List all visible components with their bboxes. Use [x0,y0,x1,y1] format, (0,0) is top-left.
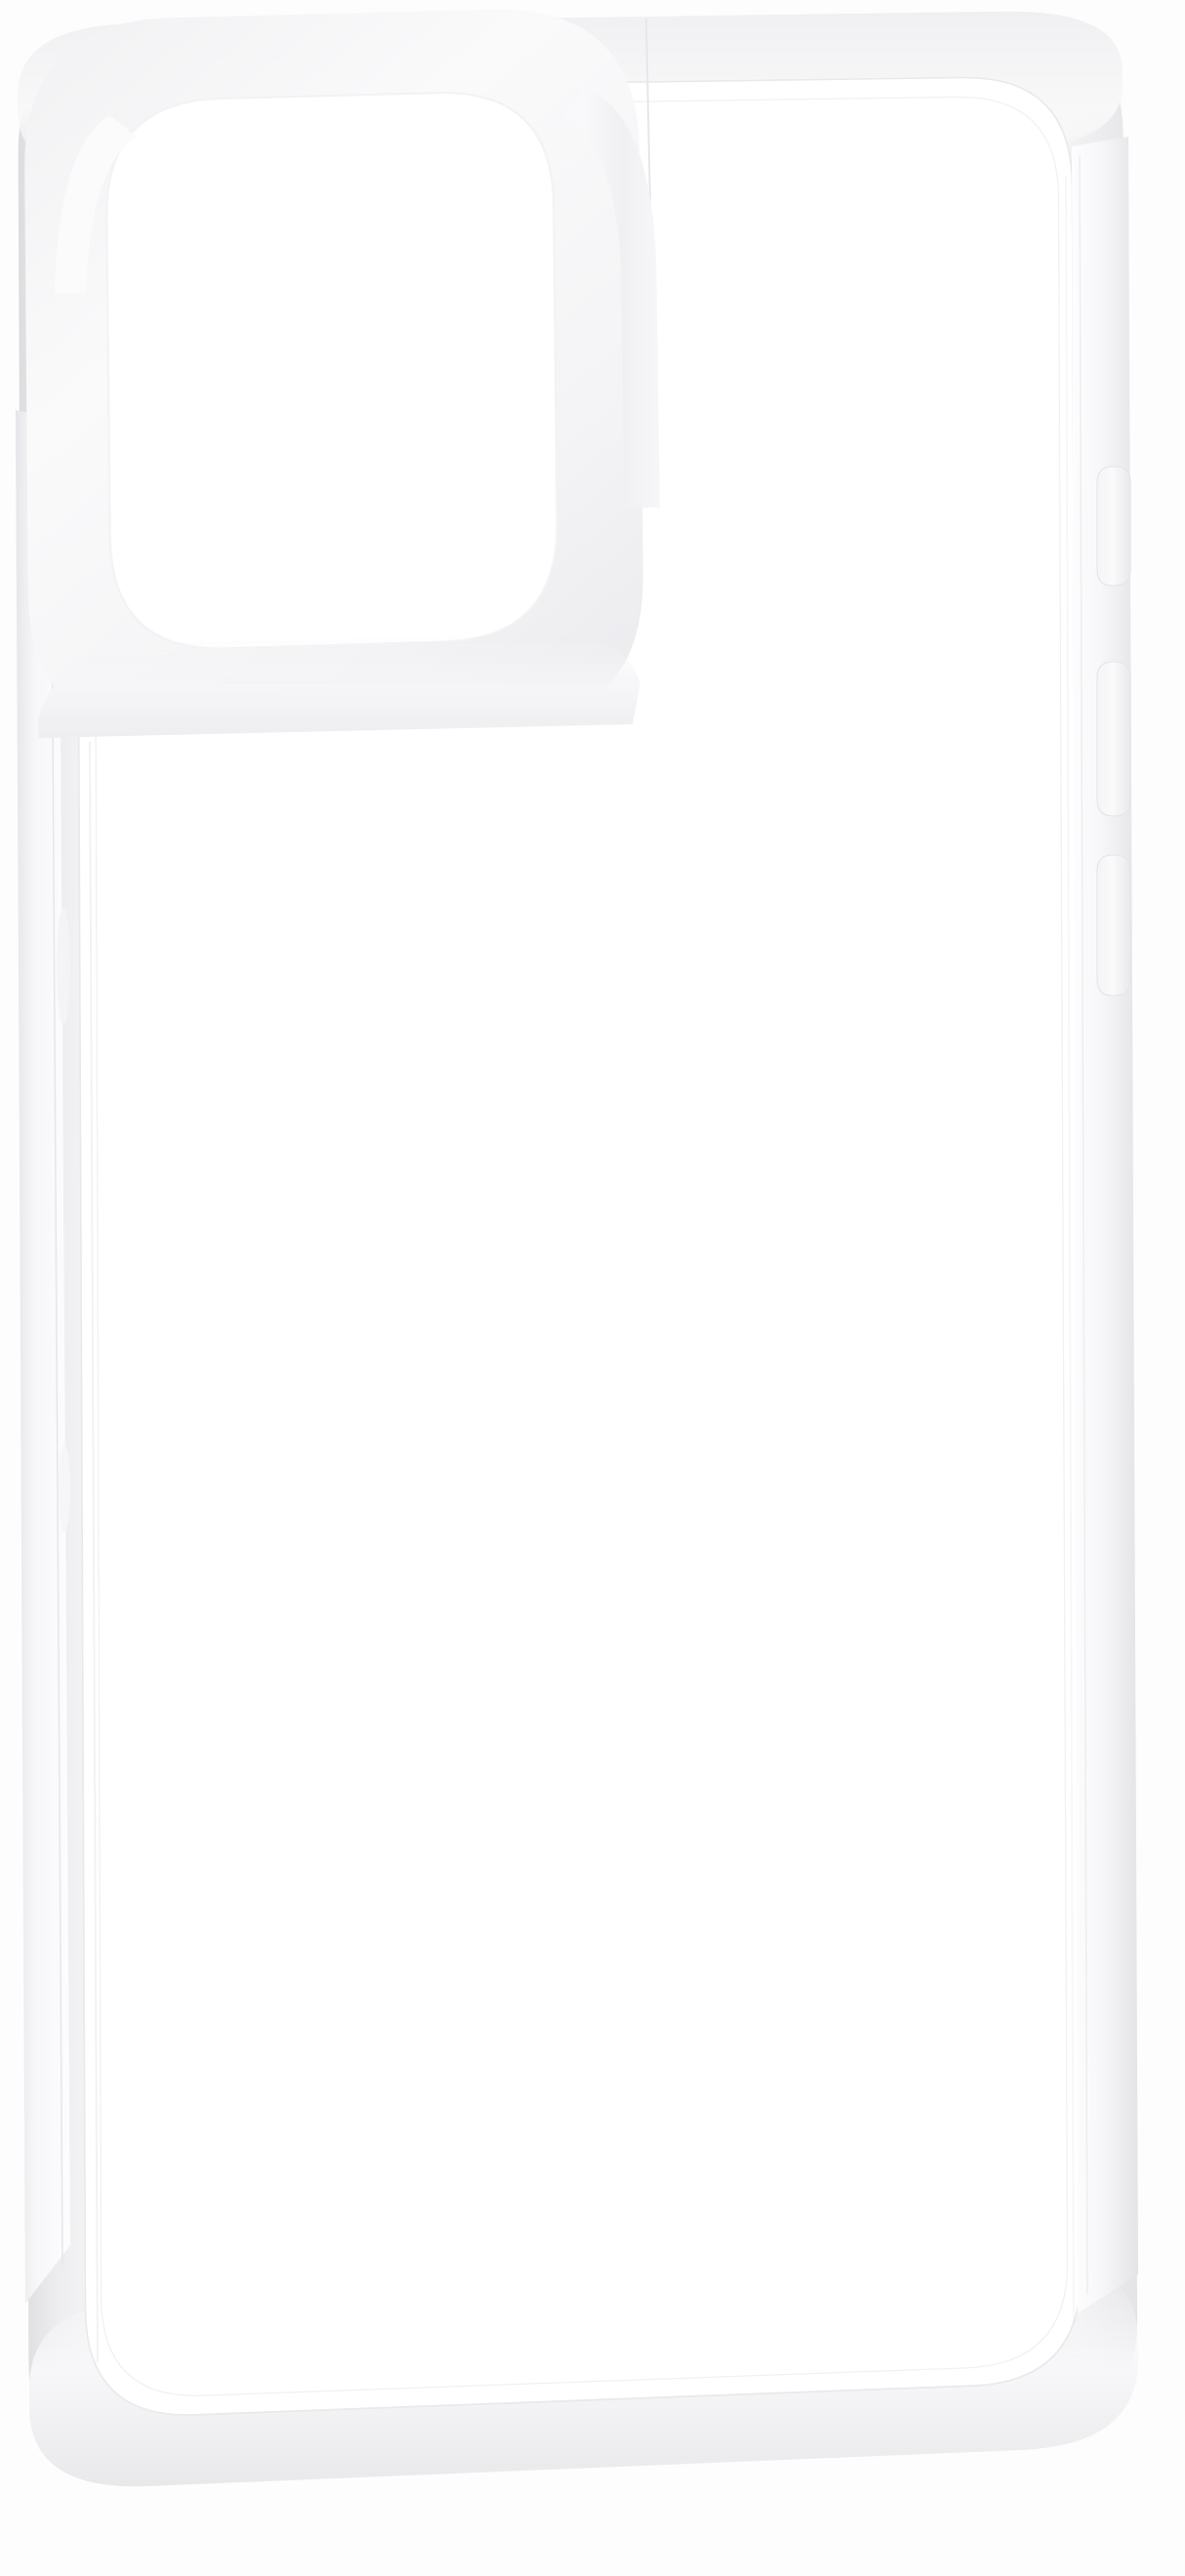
button[interactable]: Clear phone case product photo [0,0,1185,2576]
